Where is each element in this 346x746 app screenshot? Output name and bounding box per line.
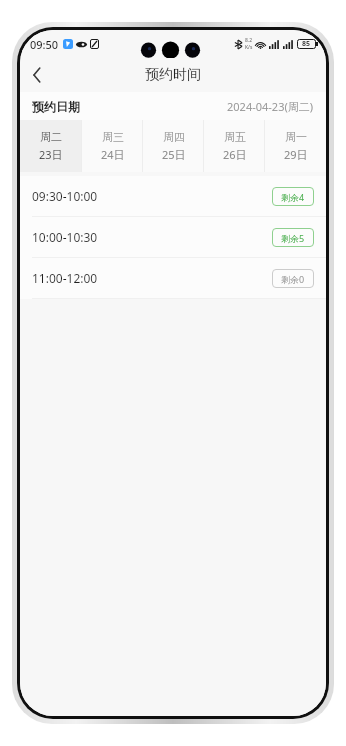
staticText: 预约日期	[32, 99, 80, 114]
staticText: 周三	[102, 130, 124, 144]
staticText: K/s	[245, 44, 253, 51]
button[interactable]: 周五	[204, 120, 265, 172]
staticText: 周五	[224, 130, 246, 144]
staticText: 周四	[163, 130, 185, 144]
button[interactable]: 周四	[143, 120, 204, 172]
staticText: 09:50	[30, 37, 59, 52]
staticText: 85	[302, 39, 311, 49]
staticText: 预约时间	[145, 66, 201, 84]
button[interactable]: Back	[20, 58, 54, 92]
staticText: 剩余0	[281, 273, 305, 285]
staticText: 周一	[285, 130, 307, 144]
staticText: 10:00-10:30	[32, 229, 98, 245]
button[interactable]: 周一	[265, 120, 326, 172]
staticText: 09:30-10:00	[32, 188, 98, 204]
button[interactable]: 周二	[20, 120, 82, 172]
staticText: 8.2	[245, 37, 253, 44]
staticText: 11:00-12:00	[32, 270, 98, 286]
staticText: 剩余5	[281, 232, 305, 244]
button[interactable]: 10:00-10:30	[20, 217, 326, 257]
staticText: 2024-04-23(周二)	[227, 99, 314, 114]
button[interactable]: 09:30-10:00	[20, 176, 326, 216]
staticText: 26日	[223, 147, 247, 162]
staticText: 24日	[101, 147, 125, 162]
staticText: 29日	[284, 147, 308, 162]
staticText: 剩余4	[281, 191, 305, 203]
staticText: 周二	[40, 130, 62, 144]
button[interactable]: 11:00-12:00	[20, 258, 326, 298]
staticText: 23日	[39, 147, 63, 162]
staticText: 25日	[162, 147, 186, 162]
button[interactable]: 周三	[82, 120, 143, 172]
